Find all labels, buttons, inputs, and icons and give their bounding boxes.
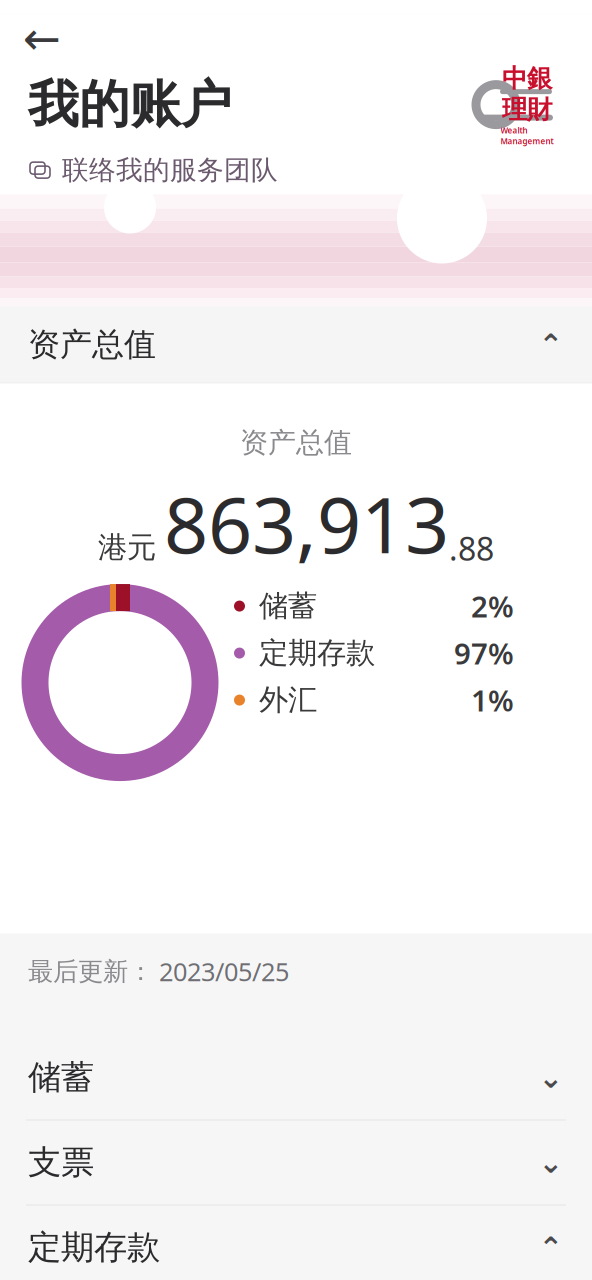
staticText: 储蓄 [28, 1057, 94, 1098]
button[interactable]: 资产总值 [0, 306, 592, 383]
staticText: ⌄ [538, 1061, 563, 1094]
staticText: ⌃ [538, 328, 563, 361]
staticText: ⌄ [538, 1146, 563, 1179]
staticText: .88 [449, 527, 494, 570]
staticText: 中銀理財 [502, 63, 552, 125]
staticText: 2023/05/25 [159, 955, 289, 988]
staticText: 定期存款 [259, 635, 375, 671]
staticText: 最后更新： [28, 956, 153, 987]
staticText: ← [23, 13, 61, 64]
staticText: 2% [471, 587, 514, 626]
staticText: 外汇 [259, 682, 317, 718]
staticText: 支票 [28, 1142, 94, 1183]
staticText: Wealth Management [500, 125, 553, 146]
staticText: 储蓄 [259, 588, 317, 624]
staticText: 我的账户 [28, 73, 232, 136]
button[interactable]: 定期存款 [0, 1205, 592, 1280]
staticText: 资产总值 [28, 325, 156, 364]
button[interactable]: 储蓄 [0, 1035, 592, 1120]
staticText: 863,913 [164, 472, 449, 575]
staticText: 联络我的服务团队 [62, 154, 278, 186]
button[interactable]: 支票 [0, 1120, 592, 1205]
staticText: ⌃ [538, 1231, 563, 1264]
staticText: 1% [471, 681, 514, 720]
staticText: 定期存款 [28, 1227, 160, 1268]
staticText: 97% [454, 634, 514, 673]
staticText: 港元 [98, 530, 156, 566]
button[interactable]: 联络我的服务团队 [0, 146, 306, 194]
staticText: 资产总值 [240, 425, 352, 460]
button[interactable]: Back [14, 13, 70, 63]
